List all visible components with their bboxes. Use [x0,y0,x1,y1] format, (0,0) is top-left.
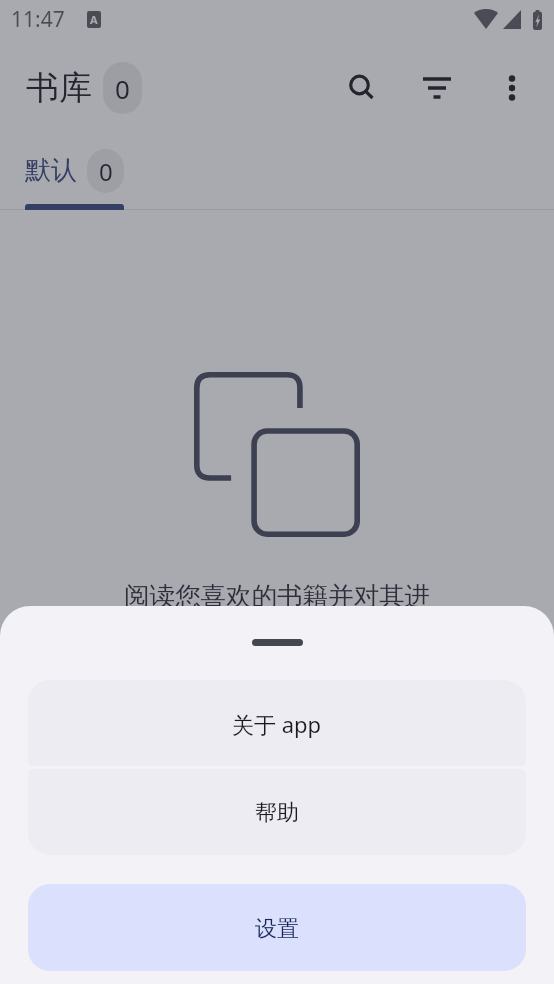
button[interactable]: 帮助 [28,769,526,855]
staticText: 阅读您喜欢的书籍并对其进行排序 [116,580,438,646]
button[interactable]: Filter [413,64,461,112]
staticText: 0 [115,71,130,106]
button[interactable]: 设置 [28,884,526,971]
staticText: 关于 app [232,709,322,739]
staticText: 11:47 [11,5,65,34]
staticText: A [90,12,98,27]
staticText: 0 [99,155,113,188]
staticText: 书库 [26,67,92,109]
button[interactable]: 默认 [25,131,124,210]
staticText: 帮助 [255,799,299,827]
staticText: 设置 [255,915,299,943]
button[interactable]: 关于 app [28,680,526,766]
staticText: 默认 [25,154,77,187]
button[interactable]: More options [488,64,536,112]
button[interactable]: Search [338,64,386,112]
